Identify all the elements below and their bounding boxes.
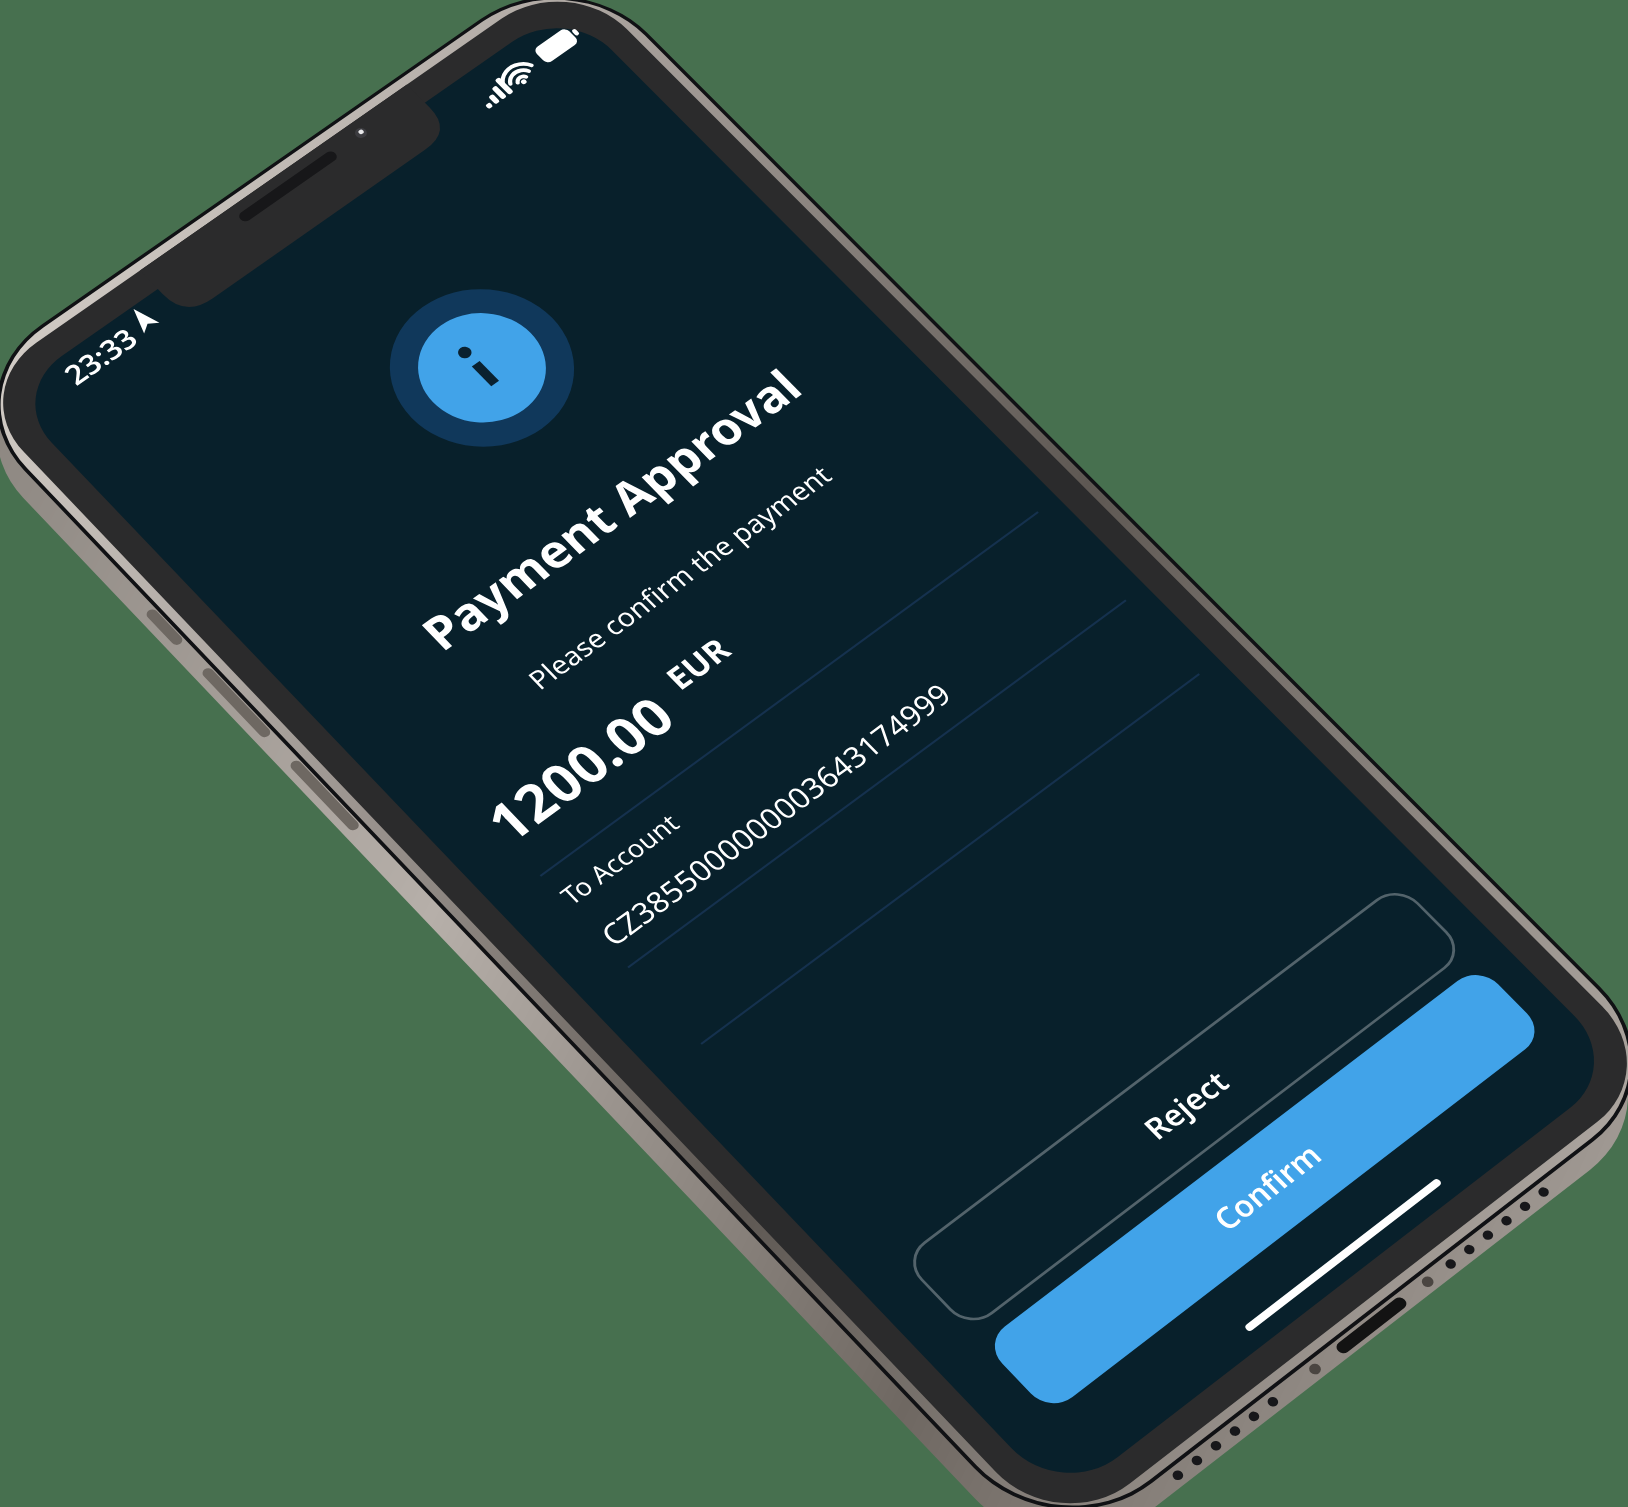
- staticText: Confirm: [1262, 1187, 1266, 1190]
- button[interactable]: Reject: [907, 879, 1461, 1332]
- button[interactable]: Confirm: [986, 960, 1542, 1416]
- button[interactable]: Payment information: [368, 250, 603, 483]
- staticText: Reject: [1183, 1104, 1186, 1106]
